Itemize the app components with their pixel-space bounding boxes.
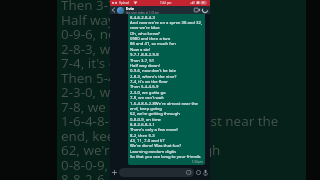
button[interactable]: Emoji	[195, 165, 202, 180]
button[interactable]: Back	[110, 6, 117, 14]
staticText: last seen today at 1:30 pm	[126, 11, 160, 14]
button[interactable]: Voice message	[202, 165, 209, 180]
button[interactable]: Video call	[193, 6, 201, 14]
button[interactable]: Attach	[110, 165, 119, 180]
button[interactable]: Voice call	[201, 6, 209, 14]
button[interactable]	[119, 168, 194, 177]
staticText: Evie	[126, 6, 135, 11]
